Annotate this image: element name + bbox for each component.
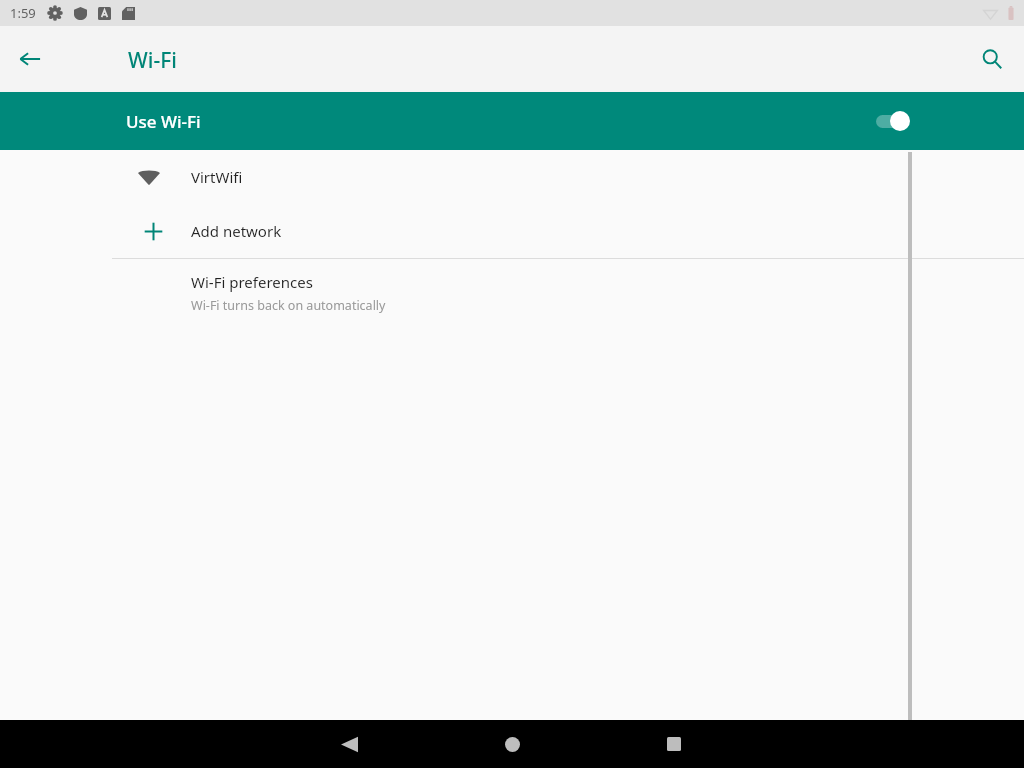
button[interactable]: Back [325,720,373,768]
button[interactable]: Search [968,35,1016,83]
staticText: Wi-Fi preferences [191,272,313,292]
button[interactable]: VirtWifi [0,150,1024,204]
button[interactable]: Home [488,720,536,768]
staticText: 1:59 [10,4,36,22]
button[interactable]: Recents [650,720,698,768]
button[interactable]: Add network [0,204,1024,258]
button[interactable]: Use Wi-Fi [0,92,1024,150]
staticText: Use Wi-Fi [126,110,201,133]
staticText: Wi-Fi [128,46,177,75]
staticText: Wi-Fi turns back on automatically [191,297,386,314]
button[interactable]: Back [6,35,54,83]
button[interactable]: Wi-Fi preferences [0,259,1024,325]
staticText: VirtWifi [191,167,243,187]
staticText: Add network [191,221,282,241]
